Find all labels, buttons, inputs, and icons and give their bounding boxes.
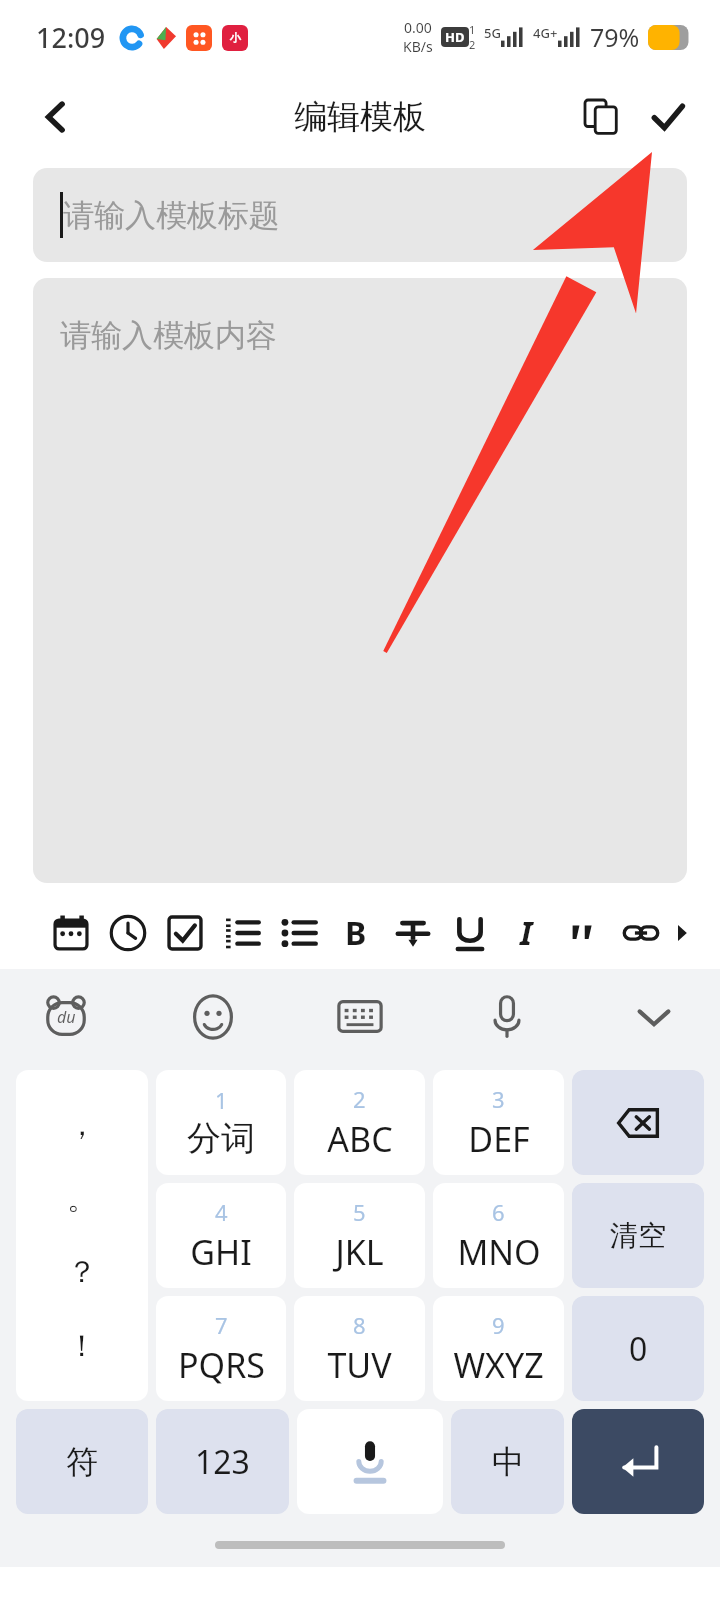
button[interactable]: 8 [294, 1296, 425, 1401]
button[interactable]: Insert date [42, 902, 99, 964]
staticText: 4 [215, 1197, 228, 1227]
button[interactable]: Hide keyboard [616, 979, 692, 1055]
button[interactable]: 7 [156, 1296, 286, 1401]
staticText: 9 [492, 1310, 505, 1340]
button[interactable]: 请输入模板标题 [33, 168, 687, 262]
staticText: 2 [353, 1084, 366, 1114]
button[interactable]: Save [640, 89, 696, 145]
staticText: JKL [335, 1229, 384, 1275]
button[interactable]: 3 [433, 1070, 564, 1175]
button[interactable]: Enter [572, 1409, 704, 1514]
staticText: GHI [190, 1229, 252, 1275]
button[interactable]: Insert time [99, 902, 156, 964]
staticText: DEF [468, 1116, 530, 1162]
staticText: 符 [66, 1442, 98, 1482]
button[interactable]: Space / voice [297, 1409, 443, 1514]
button[interactable]: Keyboard layout [322, 979, 398, 1055]
button[interactable]: 0 [572, 1296, 704, 1401]
button[interactable]: Checklist [156, 902, 213, 964]
staticText: 小 [230, 31, 241, 45]
button[interactable]: 符 [16, 1409, 148, 1514]
staticText: 1 [215, 1085, 228, 1115]
staticText: B [345, 911, 367, 955]
button[interactable]: 5 [294, 1183, 425, 1288]
staticText: 1 [469, 22, 476, 37]
staticText: 0 [629, 1327, 648, 1371]
button[interactable]: 2 [294, 1070, 425, 1175]
button[interactable]: Bold [327, 902, 384, 964]
button[interactable]: 123 [156, 1409, 289, 1514]
staticText: 中 [492, 1442, 524, 1482]
staticText: ！ [67, 1327, 97, 1365]
button[interactable]: 清空 [572, 1183, 704, 1288]
staticText: 5G [484, 24, 501, 42]
staticText: 清空 [610, 1218, 666, 1253]
staticText: KB/s [403, 37, 433, 56]
button[interactable]: Underline [441, 902, 498, 964]
staticText: 3 [492, 1084, 505, 1114]
staticText: 分词 [187, 1117, 255, 1160]
button[interactable]: 9 [433, 1296, 564, 1401]
staticText: 123 [195, 1440, 250, 1484]
staticText: 5 [353, 1197, 366, 1227]
button[interactable]: 中 [451, 1409, 564, 1514]
button[interactable]: Italic [498, 902, 555, 964]
button[interactable]: 请输入模板内容 [33, 278, 687, 883]
button[interactable]: Link [612, 902, 669, 964]
staticText: MNO [457, 1229, 541, 1275]
button[interactable]: Voice input [469, 979, 545, 1055]
button[interactable]: Backspace [572, 1070, 704, 1175]
button[interactable]: 1 [156, 1070, 286, 1175]
button[interactable]: Back [28, 89, 84, 145]
button[interactable]: More formatting [669, 902, 695, 964]
staticText: I [520, 911, 533, 955]
staticText: 6 [492, 1197, 505, 1227]
staticText: PQRS [178, 1342, 265, 1388]
button[interactable]: Quote [555, 902, 612, 964]
staticText: ， [67, 1106, 97, 1144]
button[interactable]: Duplicate [574, 89, 630, 145]
staticText: WXYZ [453, 1342, 544, 1388]
button[interactable]: 6 [433, 1183, 564, 1288]
staticText: ABC [327, 1116, 393, 1162]
staticText: ？ [67, 1253, 97, 1291]
staticText: du [57, 1006, 76, 1028]
staticText: 请输入模板标题 [63, 196, 280, 235]
staticText: TUV [327, 1342, 392, 1388]
button[interactable]: Bulleted list [270, 902, 327, 964]
button[interactable]: Emoji [175, 979, 251, 1055]
button[interactable]: Strikethrough [384, 902, 441, 964]
button[interactable]: 4 [156, 1183, 286, 1288]
button[interactable]: ， [16, 1070, 148, 1401]
staticText: 编辑模板 [294, 96, 426, 138]
staticText: 4G+ [533, 24, 558, 42]
staticText: 7 [215, 1310, 228, 1340]
button[interactable]: Baidu input [28, 979, 104, 1055]
button[interactable]: Numbered list [213, 902, 270, 964]
staticText: 2 [469, 37, 476, 52]
staticText: 0.00 [404, 18, 432, 37]
staticText: HD [445, 28, 465, 46]
staticText: 79% [590, 20, 640, 54]
staticText: 8 [353, 1310, 366, 1340]
staticText: 。 [67, 1180, 97, 1218]
staticText: 12:09 [36, 19, 106, 56]
staticText: 请输入模板内容 [60, 316, 277, 355]
